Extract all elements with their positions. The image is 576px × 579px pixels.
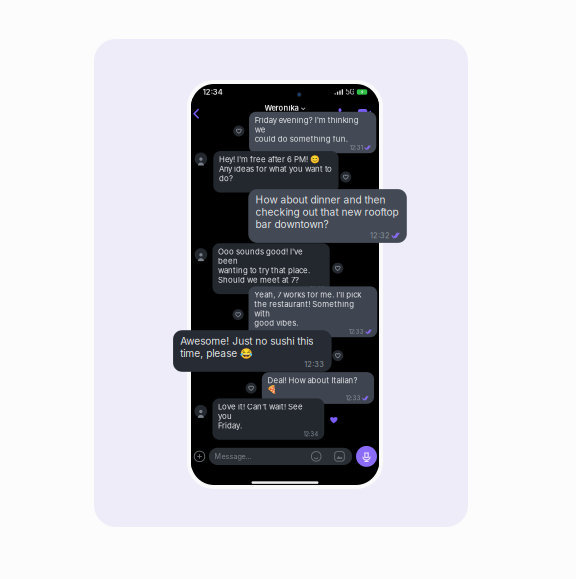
staticText: 12:33 [304,360,324,369]
staticText: 12:32 [370,231,390,240]
staticText: Love it! Can't wait! See you Friday. [218,402,303,430]
button[interactable]: Back [188,105,204,123]
staticText: Weronika [264,103,298,113]
staticText: 5G [345,88,354,96]
staticText: 12:34 [304,431,319,438]
staticText: Friday evening? I'm thinking we could do… [255,115,359,144]
button[interactable]: Message... [209,448,352,465]
button[interactable]: Voice call [335,104,351,122]
staticText: 12:33 [346,395,361,402]
staticText: Ooo sounds good! I've been wanting to tr… [218,247,310,285]
button[interactable]: Add attachment [192,448,207,464]
staticText: Yeah, 7 works for me. I'll pick the rest… [254,290,361,328]
staticText: Message... [214,452,251,461]
staticText: 12:33 [349,328,364,335]
button[interactable]: Video call [356,104,373,122]
staticText: Awesome! Just no sushi this time, please… [180,335,313,359]
staticText: How about dinner and then checking out t… [256,194,399,231]
staticText: 12:31 [350,144,363,151]
button[interactable]: Record voice message [356,446,377,467]
staticText: Online [275,113,294,120]
button[interactable]: Weronika [249,103,321,121]
staticText: Deal! How about Italian? 🍕 [267,376,357,394]
staticText: 12:32 [310,285,324,292]
staticText: Hey! I'm free after 6 PM! 😊 Any ideas fo… [219,155,332,183]
staticText: 12:34 [203,87,223,96]
button[interactable]: Emoji [310,450,323,463]
button[interactable]: Stickers [333,450,346,463]
